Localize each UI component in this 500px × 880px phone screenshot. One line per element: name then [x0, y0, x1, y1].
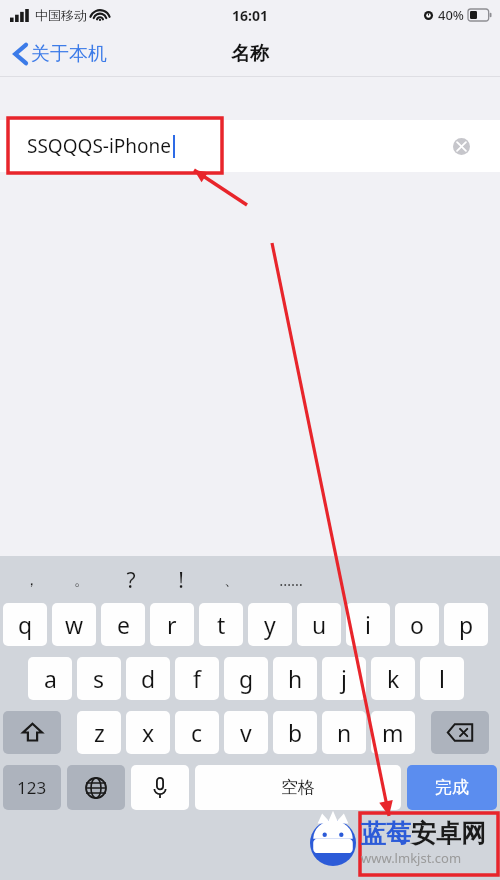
- staticText: 40%: [438, 6, 464, 24]
- button[interactable]: k: [371, 657, 415, 700]
- staticText: 。: [74, 571, 89, 590]
- staticText: y: [264, 609, 276, 640]
- button[interactable]: z: [77, 711, 121, 754]
- staticText: m: [382, 717, 404, 748]
- staticText: j: [341, 663, 347, 694]
- button[interactable]: 删除: [431, 711, 489, 754]
- button[interactable]: ……: [256, 560, 326, 600]
- button[interactable]: 完成: [407, 765, 497, 810]
- button[interactable]: !: [156, 560, 206, 600]
- button[interactable]: 、: [206, 560, 256, 600]
- staticText: e: [117, 609, 130, 640]
- button[interactable]: ?: [106, 560, 156, 600]
- staticText: u: [312, 609, 327, 640]
- staticText: f: [193, 663, 201, 694]
- button[interactable]: q: [3, 603, 47, 646]
- staticText: ，: [24, 571, 39, 590]
- staticText: d: [141, 663, 156, 694]
- button[interactable]: 关于本机: [0, 36, 117, 72]
- button[interactable]: l: [420, 657, 464, 700]
- staticText: 16:01: [232, 6, 268, 25]
- button[interactable]: i: [346, 603, 390, 646]
- staticText: x: [142, 717, 155, 748]
- staticText: c: [191, 717, 203, 748]
- staticText: 名称: [231, 42, 269, 66]
- button[interactable]: 。: [56, 560, 106, 600]
- button[interactable]: SSQQQS-iPhone: [0, 120, 500, 172]
- button[interactable]: v: [224, 711, 268, 754]
- staticText: 完成: [435, 777, 469, 798]
- staticText: n: [337, 717, 352, 748]
- button[interactable]: 空格: [195, 765, 401, 810]
- button[interactable]: c: [175, 711, 219, 754]
- button[interactable]: p: [444, 603, 488, 646]
- staticText: w: [65, 609, 84, 640]
- staticText: www.lmkjst.com: [361, 849, 462, 867]
- staticText: v: [240, 717, 252, 748]
- staticText: ……: [279, 570, 303, 590]
- staticText: o: [410, 609, 424, 640]
- button[interactable]: n: [322, 711, 366, 754]
- staticText: h: [288, 663, 303, 694]
- staticText: 123: [17, 776, 47, 799]
- button[interactable]: g: [224, 657, 268, 700]
- button[interactable]: 语音输入: [131, 765, 189, 810]
- staticText: z: [94, 717, 105, 748]
- staticText: r: [167, 609, 177, 640]
- staticText: !: [178, 566, 184, 595]
- staticText: 空格: [281, 777, 315, 798]
- button[interactable]: x: [126, 711, 170, 754]
- button[interactable]: d: [126, 657, 170, 700]
- staticText: p: [459, 609, 474, 640]
- staticText: ?: [126, 566, 136, 595]
- staticText: 、: [224, 571, 239, 590]
- button[interactable]: y: [248, 603, 292, 646]
- staticText: k: [387, 663, 400, 694]
- staticText: t: [217, 609, 226, 640]
- staticText: i: [365, 609, 371, 640]
- button[interactable]: j: [322, 657, 366, 700]
- button[interactable]: u: [297, 603, 341, 646]
- button[interactable]: h: [273, 657, 317, 700]
- button[interactable]: o: [395, 603, 439, 646]
- button[interactable]: 清除文本: [453, 138, 470, 155]
- button[interactable]: w: [52, 603, 96, 646]
- button[interactable]: m: [371, 711, 415, 754]
- staticText: SSQQQS-iPhone: [27, 133, 172, 159]
- staticText: b: [288, 717, 303, 748]
- button[interactable]: ，: [6, 560, 56, 600]
- button[interactable]: a: [28, 657, 72, 700]
- staticText: 蓝莓: [361, 818, 411, 849]
- staticText: q: [18, 609, 33, 640]
- button[interactable]: r: [150, 603, 194, 646]
- button[interactable]: e: [101, 603, 145, 646]
- button[interactable]: Shift: [3, 711, 61, 754]
- staticText: 安卓网: [411, 818, 486, 849]
- staticText: a: [44, 663, 57, 694]
- button[interactable]: f: [175, 657, 219, 700]
- staticText: s: [93, 663, 105, 694]
- staticText: 关于本机: [31, 42, 107, 66]
- button[interactable]: t: [199, 603, 243, 646]
- staticText: g: [239, 663, 254, 694]
- button[interactable]: s: [77, 657, 121, 700]
- button[interactable]: b: [273, 711, 317, 754]
- button[interactable]: 切换输入法: [67, 765, 125, 810]
- staticText: l: [439, 663, 445, 694]
- staticText: 中国移动: [35, 7, 87, 23]
- button[interactable]: 123: [3, 765, 61, 810]
